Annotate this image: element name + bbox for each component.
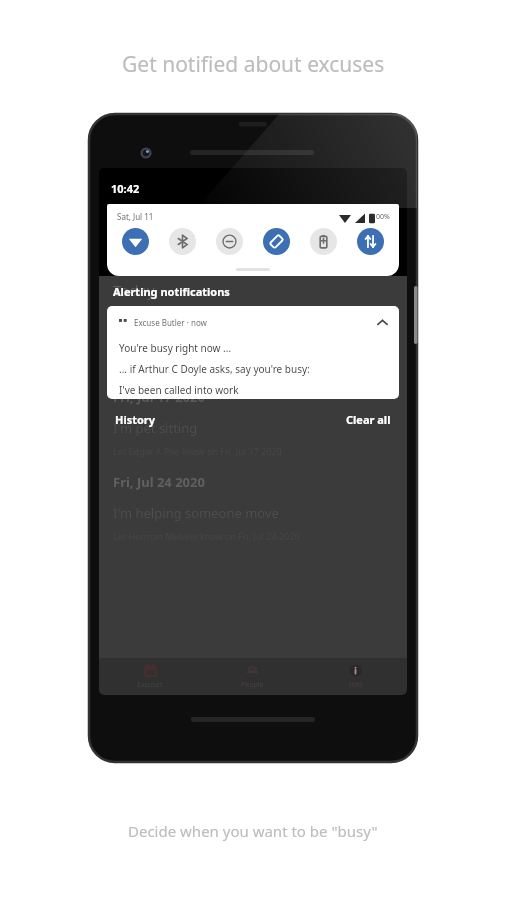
staticText: I've been called into work [119, 383, 239, 397]
staticText: Sat, Jul 11 [117, 211, 154, 222]
staticText: Fri, Jul 17 2020 [113, 388, 205, 406]
button[interactable]: Bluetooth [169, 228, 196, 255]
button[interactable]: Battery saver [310, 228, 337, 255]
staticText: Alerting notifications [113, 284, 230, 299]
staticText: ... if Arthur C Doyle asks, say you're b… [119, 362, 310, 376]
staticText: 100% [372, 212, 390, 222]
staticText: I've been called into work [113, 309, 269, 327]
staticText: I'm pet sitting [113, 419, 198, 437]
button[interactable]: History [115, 412, 156, 427]
button[interactable]: Do not disturb [216, 228, 243, 255]
staticText: Info [349, 680, 363, 690]
staticText: 10:42 [111, 181, 140, 196]
staticText: Get notified about excuses [122, 50, 385, 79]
staticText: I'm helping someone move [113, 504, 279, 522]
button[interactable]: Wi-Fi [122, 228, 149, 255]
staticText: People [241, 680, 264, 690]
button[interactable]: Excuse Butler · now [107, 306, 399, 399]
staticText: You're busy right now ... [119, 341, 232, 355]
staticText: History [115, 412, 156, 427]
staticText: Excuses [137, 680, 163, 690]
staticText: Clear all [346, 412, 391, 427]
staticText: Decide when you want to be "busy" [128, 821, 378, 841]
staticText: Today [113, 280, 155, 300]
button[interactable]: Mobile data [357, 228, 384, 255]
button[interactable]: Excuses [99, 659, 201, 695]
button[interactable]: Clear all [346, 412, 391, 427]
staticText: Excuse Butler · now [134, 317, 207, 328]
button[interactable]: Info [304, 659, 407, 695]
button[interactable]: Collapse notification [374, 314, 390, 330]
button[interactable]: Auto rotate [263, 228, 290, 255]
staticText: Fri, Jul 24 2020 [113, 473, 205, 491]
staticText: Let Arthur C Doyle know on Sat, Jul 11 2… [113, 334, 295, 346]
